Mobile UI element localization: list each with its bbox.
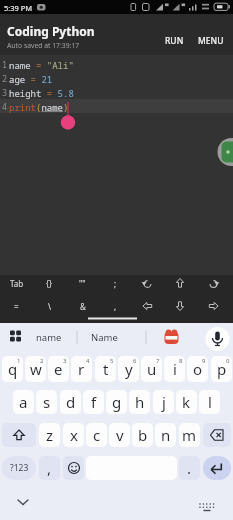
staticText: 1 <box>17 357 21 365</box>
button[interactable]: d <box>60 390 81 414</box>
button[interactable] <box>63 456 84 480</box>
button[interactable]: g <box>106 390 127 414</box>
button[interactable]: r <box>71 356 92 382</box>
button[interactable]: ; <box>99 275 132 292</box>
button[interactable]: v <box>109 423 130 447</box>
staticText: u <box>147 359 157 379</box>
button[interactable]: o <box>187 356 208 382</box>
button[interactable]: i <box>164 356 185 382</box>
staticText: 9 <box>202 357 206 365</box>
button[interactable] <box>198 275 231 292</box>
staticText: name = "Ali" <box>9 59 74 71</box>
staticText: Auto saved at 17:39:17 <box>7 41 80 50</box>
staticText: \ <box>48 301 51 312</box>
staticText: i <box>173 359 177 379</box>
staticText: . <box>187 458 192 478</box>
staticText: = <box>14 301 19 312</box>
staticText: f <box>91 392 97 412</box>
button[interactable]: h <box>129 390 150 414</box>
button[interactable]: \ <box>33 298 66 314</box>
button[interactable]: t <box>95 356 116 382</box>
button[interactable] <box>132 298 165 314</box>
staticText: , <box>114 301 117 312</box>
button[interactable]: , <box>99 298 132 314</box>
staticText: a <box>19 392 28 412</box>
button[interactable]: s <box>36 390 57 414</box>
staticText: o <box>193 359 203 379</box>
button[interactable]: RUN <box>161 31 188 51</box>
button[interactable]: u <box>141 356 162 382</box>
staticText: g <box>112 392 122 412</box>
staticText: y <box>125 359 133 379</box>
staticText: 5 <box>110 357 114 365</box>
staticText: v <box>116 425 124 445</box>
button[interactable]: f <box>83 390 104 414</box>
button[interactable] <box>198 298 231 314</box>
button[interactable]: l <box>199 390 220 414</box>
button[interactable]: q <box>2 356 23 382</box>
staticText: h <box>135 392 145 412</box>
button[interactable]: . <box>179 456 200 480</box>
button[interactable] <box>203 456 231 480</box>
staticText: n <box>161 425 171 445</box>
button[interactable]: a <box>13 390 34 414</box>
button[interactable] <box>2 423 36 447</box>
button[interactable]: Tab <box>0 275 33 292</box>
staticText: l <box>208 392 212 412</box>
button[interactable]: = <box>0 298 33 314</box>
button[interactable]: name <box>36 331 62 344</box>
staticText: 1 <box>2 59 8 71</box>
staticText: ; <box>114 278 117 289</box>
button[interactable]: Name <box>91 331 118 344</box>
staticText: t <box>103 359 109 379</box>
button[interactable]: MENU <box>194 31 228 51</box>
staticText: b <box>138 425 148 445</box>
button[interactable]: & <box>66 298 99 314</box>
button[interactable]: j <box>153 390 174 414</box>
button[interactable]: b <box>132 423 153 447</box>
button[interactable] <box>194 495 218 513</box>
button[interactable]: , <box>39 456 60 480</box>
staticText: "" <box>79 278 86 289</box>
staticText: x <box>70 425 78 445</box>
staticText: p <box>217 359 227 379</box>
button[interactable]: n <box>155 423 176 447</box>
button[interactable]: ?123 <box>2 456 36 480</box>
button[interactable]: x <box>63 423 84 447</box>
button[interactable]: {} <box>33 275 66 292</box>
staticText: print(name) <box>9 101 69 113</box>
staticText: age = 21 <box>9 73 53 85</box>
button[interactable]: k <box>176 390 197 414</box>
button[interactable]: w <box>25 356 46 382</box>
staticText: 3 <box>2 87 8 99</box>
button[interactable]: m <box>179 423 200 447</box>
button[interactable]: e <box>48 356 69 382</box>
button[interactable] <box>203 423 231 447</box>
staticText: k <box>182 392 191 412</box>
staticText: 4 <box>86 357 90 365</box>
staticText: z <box>46 425 54 445</box>
staticText: , <box>47 458 52 478</box>
button[interactable]: c <box>86 423 107 447</box>
button[interactable] <box>165 275 198 292</box>
button[interactable] <box>132 275 165 292</box>
button[interactable]: z <box>39 423 60 447</box>
staticText: & <box>80 301 86 312</box>
button[interactable] <box>165 298 198 314</box>
button[interactable] <box>10 493 36 511</box>
button[interactable]: "" <box>66 275 99 292</box>
staticText: 0 <box>226 357 230 365</box>
staticText: {} <box>46 278 53 289</box>
staticText: d <box>66 392 76 412</box>
staticText: j <box>162 392 166 412</box>
staticText: 8 <box>179 357 183 365</box>
staticText: q <box>8 359 18 379</box>
staticText: 5:39 PM <box>4 3 33 13</box>
button[interactable]: y <box>118 356 139 382</box>
staticText: Tab <box>10 278 24 289</box>
staticText: m <box>182 425 197 445</box>
staticText: Coding Python <box>7 23 95 39</box>
staticText: ?123 <box>10 462 29 474</box>
button[interactable]: p <box>211 356 232 382</box>
